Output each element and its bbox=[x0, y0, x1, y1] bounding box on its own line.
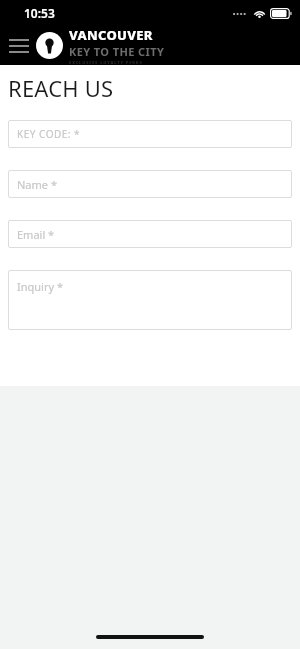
button[interactable]: Inquiry * bbox=[8, 270, 292, 330]
button[interactable]: KEY CODE: * bbox=[8, 120, 292, 148]
button[interactable]: Email * bbox=[8, 220, 292, 248]
button[interactable]: Open navigation menu bbox=[6, 35, 32, 57]
staticText: REACH US bbox=[8, 73, 114, 103]
staticText: Inquiry * bbox=[17, 279, 64, 294]
staticText: KEY TO THE CITY bbox=[69, 44, 165, 59]
button[interactable]: VANCOUVER bbox=[36, 26, 165, 65]
staticText: VANCOUVER bbox=[69, 26, 153, 44]
staticText: Name * bbox=[17, 177, 57, 192]
staticText: KEY CODE: * bbox=[17, 127, 81, 141]
button[interactable]: Name * bbox=[8, 170, 292, 198]
staticText: 10:53 bbox=[24, 5, 55, 21]
staticText: Email * bbox=[17, 227, 55, 242]
staticText: EXCLUSIVE LOYALTY PERKS bbox=[69, 60, 143, 65]
